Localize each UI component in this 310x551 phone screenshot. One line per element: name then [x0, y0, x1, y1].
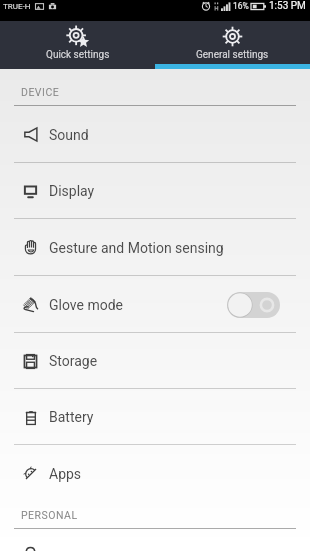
button[interactable] — [0, 529, 310, 551]
staticText: Storage — [49, 353, 98, 369]
button[interactable]: Glove mode — [0, 276, 310, 333]
staticText: Display — [49, 183, 95, 199]
staticText: TRUE-H — [3, 2, 31, 11]
button[interactable]: Quick settings — [0, 21, 155, 69]
button[interactable]: Glove mode toggle — [227, 292, 280, 318]
staticText: Sound — [49, 127, 89, 143]
button[interactable]: Display — [0, 163, 310, 219]
button[interactable]: Sound — [0, 106, 310, 163]
button[interactable]: Battery — [0, 389, 310, 445]
button[interactable]: Apps — [0, 445, 310, 502]
staticText: 16% — [233, 1, 249, 11]
button[interactable]: Gesture and Motion sensing — [0, 219, 310, 276]
staticText: Gesture and Motion sensing — [49, 240, 224, 256]
staticText: Apps — [49, 466, 82, 482]
staticText: General settings — [196, 49, 269, 61]
staticText: Battery — [49, 409, 94, 425]
staticText: DEVICE — [21, 86, 60, 98]
staticText: Quick settings — [46, 49, 110, 61]
button[interactable]: Storage — [0, 333, 310, 389]
staticText: Glove mode — [49, 297, 123, 313]
staticText: PERSONAL — [21, 509, 78, 521]
staticText: 1:53 PM — [269, 0, 306, 12]
button[interactable]: General settings — [155, 21, 310, 69]
